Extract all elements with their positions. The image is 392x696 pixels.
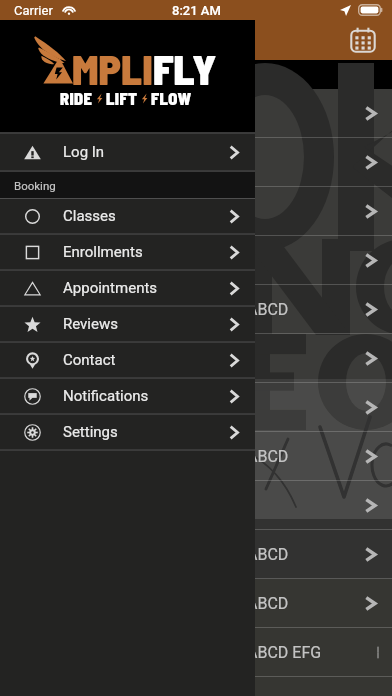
button[interactable] <box>0 481 392 529</box>
staticText: Classes <box>63 207 116 225</box>
button[interactable]: Appointments <box>0 271 255 305</box>
button[interactable]: Settings <box>0 415 255 449</box>
staticText: Contact <box>63 351 116 369</box>
staticText: Booking <box>14 179 56 192</box>
button[interactable] <box>0 138 392 186</box>
staticText: LIFT <box>106 88 138 108</box>
button[interactable] <box>0 236 392 284</box>
staticText: ABCD <box>247 545 289 564</box>
button[interactable] <box>0 89 392 137</box>
staticText: 8:21 AM <box>172 3 221 18</box>
staticText: MPLI <box>72 43 153 93</box>
button[interactable]: ABCD <box>0 285 392 333</box>
button[interactable]: Calendar <box>348 25 378 55</box>
button[interactable]: Classes <box>0 199 255 233</box>
button[interactable] <box>0 334 392 382</box>
staticText: Carrier <box>14 3 53 18</box>
staticText: Appointments <box>63 279 158 297</box>
staticText: RIDE <box>60 88 93 108</box>
button[interactable]: ABCD EFG (Minutes) <box>0 628 392 676</box>
button[interactable]: Enrollments <box>0 235 255 269</box>
button[interactable]: Log In <box>0 134 255 170</box>
staticText: ABCD <box>247 447 289 466</box>
staticText: FLOW <box>151 88 192 108</box>
button[interactable]: ABCD <box>0 432 392 480</box>
button[interactable]: Contact <box>0 343 255 377</box>
staticText: FLY <box>153 43 217 93</box>
button[interactable]: Reviews <box>0 307 255 341</box>
button[interactable] <box>0 187 392 235</box>
staticText: Enrollments <box>63 243 143 261</box>
staticText: ABCD <box>247 594 289 613</box>
staticText: Log In <box>63 143 105 161</box>
button[interactable]: Notifications <box>0 379 255 413</box>
staticText: ABCD <box>247 300 289 319</box>
staticText: Reviews <box>63 315 118 333</box>
staticText: ABCD EFG (Minutes) <box>247 643 378 662</box>
staticText: Settings <box>63 423 118 441</box>
button[interactable]: ABCD <box>0 579 392 627</box>
staticText: Notifications <box>63 387 149 405</box>
button[interactable] <box>0 383 392 431</box>
button[interactable]: ABCD <box>0 530 392 578</box>
